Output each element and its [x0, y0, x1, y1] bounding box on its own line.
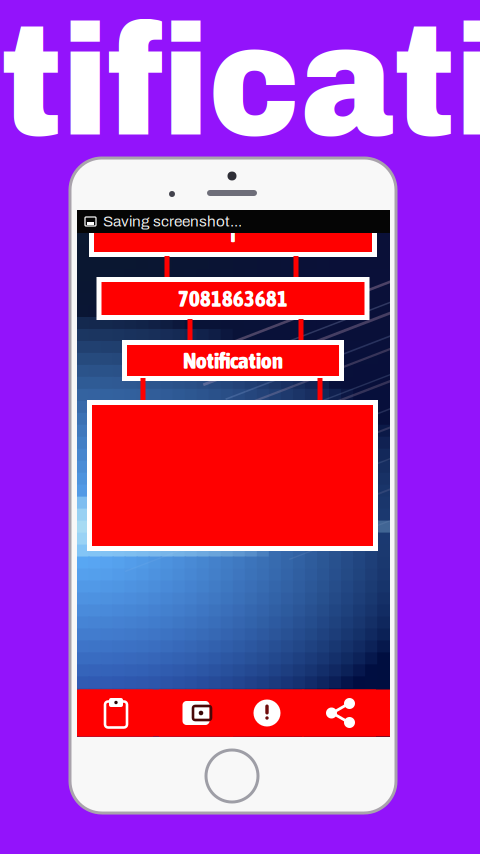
button[interactable]: Save: [159, 689, 233, 736]
staticText: Saving screenshot...: [103, 213, 242, 230]
button[interactable]: Share: [302, 689, 376, 736]
staticText: Notification: [0, 0, 480, 168]
staticText: T: [228, 221, 238, 247]
staticText: Notification: [183, 347, 283, 373]
button[interactable]: Warning: [230, 689, 304, 736]
staticText: 7081863681: [178, 285, 288, 311]
button[interactable]: Copy: [79, 689, 153, 736]
